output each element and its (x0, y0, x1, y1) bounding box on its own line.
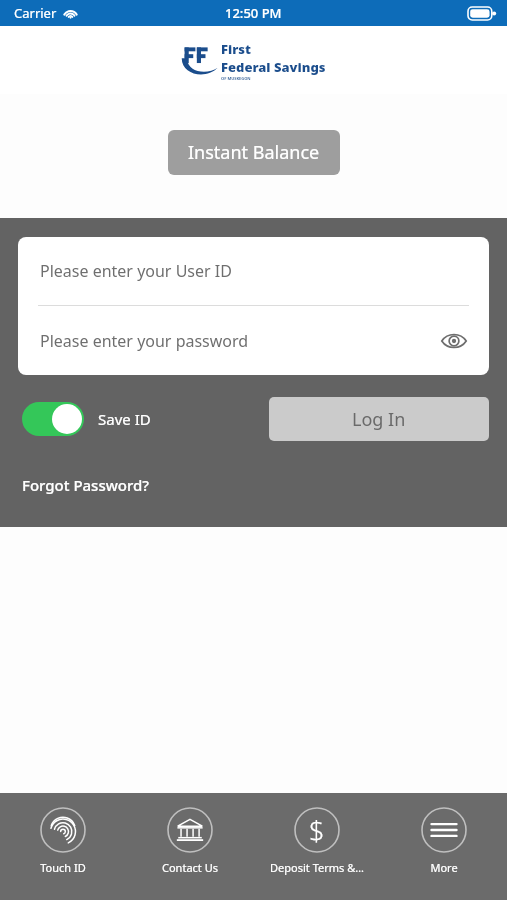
button[interactable]: More (384, 793, 504, 875)
staticText: 12:50 PM (225, 4, 282, 22)
button[interactable]: Touch ID (3, 793, 123, 875)
staticText: $ (309, 812, 325, 849)
button[interactable]: Save ID toggle (22, 402, 84, 436)
button[interactable]: Show password (437, 324, 471, 358)
staticText: Carrier (14, 4, 57, 22)
staticText: Forgot Password? (22, 475, 150, 495)
staticText: Instant Balance (188, 140, 320, 165)
staticText: Federal Savings (221, 58, 326, 76)
staticText: OF MUSKEGON (221, 76, 251, 81)
button[interactable]: Please enter your password (18, 306, 489, 375)
staticText: Please enter your User ID (40, 260, 232, 282)
staticText: Save ID (98, 409, 151, 429)
button[interactable]: Instant Balance (168, 130, 340, 175)
button[interactable]: $ (257, 793, 377, 875)
staticText: First (221, 40, 252, 58)
button[interactable]: Log In (269, 397, 489, 441)
staticText: Contact Us (162, 860, 218, 875)
staticText: Deposit Terms &… (270, 860, 364, 875)
button[interactable]: Contact Us (130, 793, 250, 875)
staticText: Log In (352, 407, 406, 432)
staticText: Touch ID (40, 860, 86, 875)
staticText: More (430, 860, 458, 875)
button[interactable]: Forgot Password? (22, 475, 150, 495)
button[interactable]: Please enter your User ID (18, 237, 489, 305)
staticText: Please enter your password (40, 330, 249, 352)
